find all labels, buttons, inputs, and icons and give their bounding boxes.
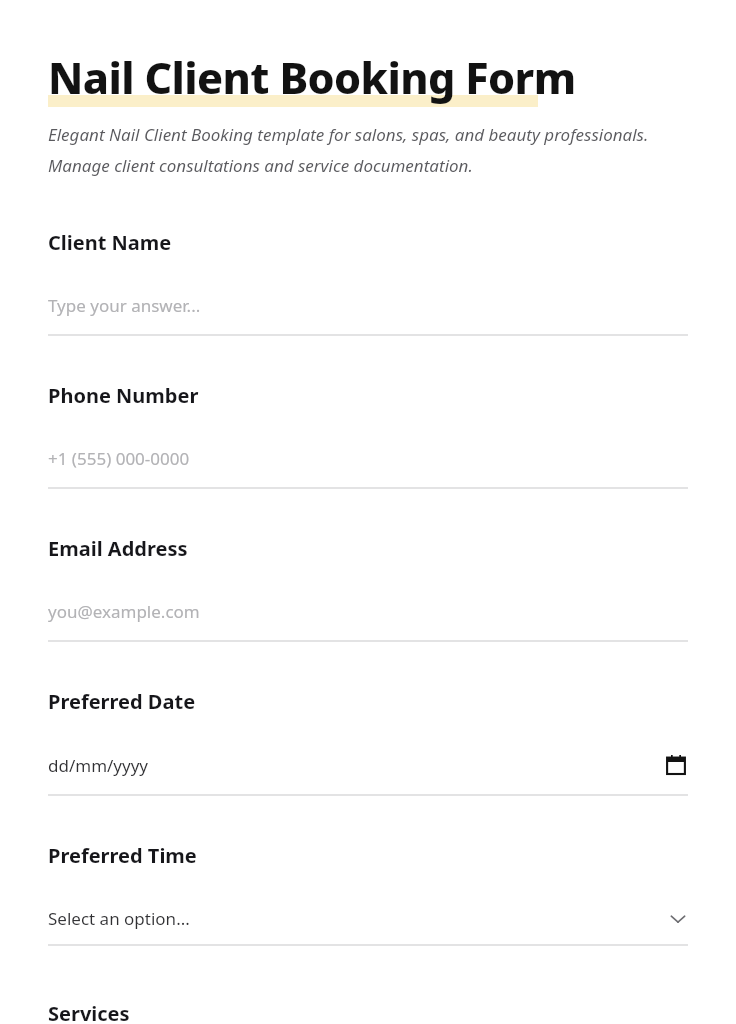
staticText: +1 (555) 000-0000: [48, 447, 190, 470]
button[interactable]: Pick a date: [664, 753, 688, 777]
staticText: Preferred Date: [48, 688, 196, 715]
button[interactable]: Phone Number: [48, 382, 688, 489]
staticText: Email Address: [48, 535, 188, 562]
button[interactable]: Preferred Time: [48, 842, 688, 946]
staticText: Select an option...: [48, 907, 190, 930]
staticText: dd/mm/yyyy: [48, 754, 149, 777]
staticText: Type your answer...: [48, 294, 201, 317]
button[interactable]: Email Address: [48, 535, 688, 642]
button[interactable]: Services: [48, 1000, 130, 1024]
staticText: Elegant Nail Client Booking template for…: [48, 123, 688, 177]
staticText: you@example.com: [48, 600, 200, 623]
staticText: Preferred Time: [48, 842, 197, 869]
staticText: Nail Client Booking Form: [48, 48, 576, 107]
staticText: Phone Number: [48, 382, 199, 409]
button[interactable]: Open time options: [668, 912, 688, 926]
staticText: Client Name: [48, 229, 172, 256]
button[interactable]: Preferred Date: [48, 688, 688, 796]
button[interactable]: Client Name: [48, 229, 688, 336]
